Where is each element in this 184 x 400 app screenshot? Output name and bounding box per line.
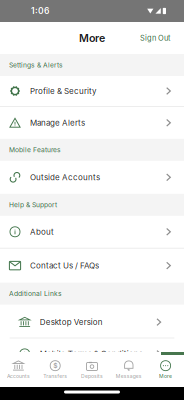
- staticText: $: [53, 362, 57, 370]
- staticText: Desktop Version: [40, 317, 103, 327]
- staticText: Additional Links: [9, 290, 62, 298]
- button[interactable]: Sign Out: [140, 25, 184, 50]
- button[interactable]: Desktop Version: [10, 307, 174, 338]
- staticText: Mobile Terms & Conditions: [40, 349, 143, 359]
- button[interactable]: Mobile Terms & Conditions: [10, 338, 174, 369]
- staticText: About: [30, 227, 54, 237]
- staticText: Accounts: [7, 373, 30, 379]
- staticText: Sign Out: [140, 33, 170, 42]
- staticText: More: [159, 373, 172, 379]
- button[interactable]: Manage Alerts: [0, 107, 184, 139]
- button[interactable]: About: [0, 216, 184, 248]
- staticText: Profile & Security: [30, 86, 96, 96]
- staticText: Outside Accounts: [30, 172, 100, 182]
- staticText: More: [79, 31, 105, 44]
- button[interactable]: Messages: [110, 352, 147, 387]
- staticText: Transfers: [43, 373, 67, 379]
- staticText: Deposits: [81, 373, 103, 379]
- button[interactable]: Outside Accounts: [0, 161, 184, 194]
- button[interactable]: Profile & Security: [0, 76, 184, 106]
- staticText: Mobile Features: [9, 146, 61, 154]
- staticText: Settings & Alerts: [9, 61, 63, 69]
- button[interactable]: Contact Us / FAQs: [0, 249, 184, 283]
- staticText: Contact Us / FAQs: [30, 261, 99, 270]
- staticText: Manage Alerts: [30, 118, 85, 128]
- button[interactable]: More: [147, 352, 184, 387]
- staticText: Messages: [116, 373, 142, 379]
- button[interactable]: Accounts: [0, 352, 37, 387]
- staticText: 1:06: [31, 6, 49, 16]
- button[interactable]: $: [37, 352, 74, 387]
- staticText: Help & Support: [9, 201, 57, 209]
- button[interactable]: Deposits: [74, 352, 110, 387]
